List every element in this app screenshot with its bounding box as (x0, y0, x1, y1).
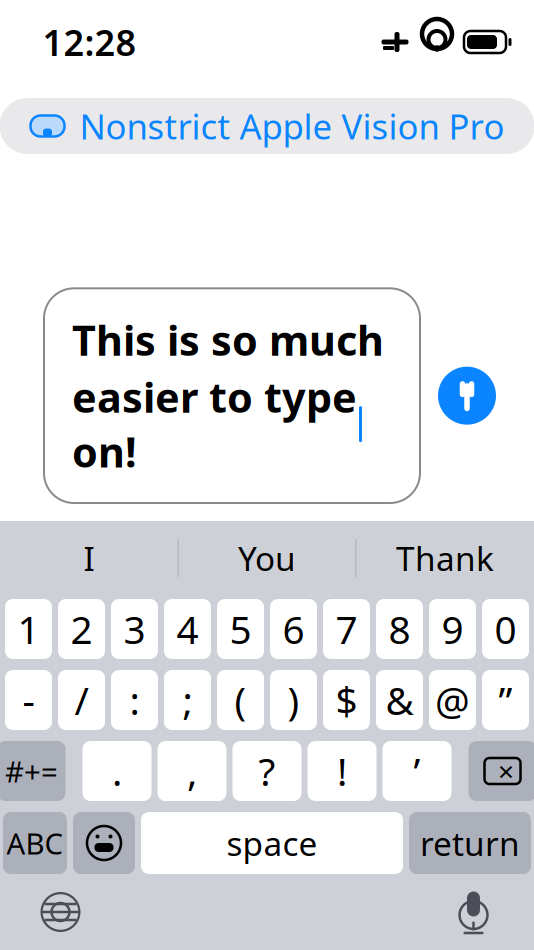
button[interactable]: 8 (376, 599, 423, 659)
button[interactable]: $ (323, 670, 370, 730)
button[interactable]: Delete (468, 741, 534, 801)
button[interactable]: 7 (323, 599, 370, 659)
button[interactable]: Emoji (73, 812, 135, 874)
staticText: You (238, 536, 296, 580)
staticText: ( (234, 674, 246, 726)
button[interactable]: ” (482, 670, 529, 730)
button[interactable]: Dictation (437, 876, 509, 948)
staticText: space (226, 821, 317, 865)
staticText: I (83, 536, 94, 580)
staticText: return (420, 821, 520, 865)
button[interactable]: I (0, 521, 177, 595)
staticText: 3 (123, 603, 145, 655)
button[interactable]: - (5, 670, 52, 730)
button[interactable]: Nonstrict Apple Vision Pro (0, 98, 534, 154)
staticText: - (22, 674, 34, 726)
button[interactable]: Send (438, 367, 496, 425)
staticText: : (129, 674, 139, 726)
button[interactable]: space (141, 812, 403, 874)
staticText: 12:28 (42, 18, 136, 66)
staticText: Thank (396, 536, 494, 580)
button[interactable]: You (179, 521, 355, 595)
staticText: @ (435, 674, 470, 726)
staticText: This is so much (72, 312, 384, 367)
staticText: 2 (70, 603, 92, 655)
staticText: ’ (413, 745, 420, 797)
staticText: #+= (5, 751, 58, 790)
staticText: ? (258, 745, 275, 797)
button[interactable]: 5 (217, 599, 264, 659)
staticText: $ (335, 674, 357, 726)
button[interactable]: 9 (429, 599, 476, 659)
staticText: 6 (282, 603, 304, 655)
button[interactable]: #+= (0, 741, 65, 801)
staticText: , (187, 745, 197, 797)
button[interactable]: ? (232, 741, 301, 801)
button[interactable]: , (157, 741, 226, 801)
staticText: & (385, 674, 413, 726)
staticText: ABC (6, 823, 63, 862)
staticText: 7 (335, 603, 357, 655)
button[interactable]: . (82, 741, 151, 801)
staticText: ) (287, 674, 299, 726)
button[interactable]: 3 (111, 599, 158, 659)
button[interactable]: return (409, 812, 531, 874)
button[interactable]: 0 (482, 599, 529, 659)
staticText: 4 (176, 603, 198, 655)
button[interactable]: 4 (164, 599, 211, 659)
button[interactable]: 1 (5, 599, 52, 659)
staticText: × (498, 752, 514, 790)
button[interactable]: @ (429, 670, 476, 730)
button[interactable]: 2 (58, 599, 105, 659)
staticText: 8 (388, 603, 410, 655)
staticText: 1 (17, 603, 39, 655)
button[interactable]: : (111, 670, 158, 730)
button[interactable]: ; (164, 670, 211, 730)
staticText: ” (498, 674, 512, 726)
button[interactable]: ABC (3, 812, 67, 874)
staticText: / (74, 674, 88, 726)
button[interactable]: Next keyboard (24, 876, 96, 948)
button[interactable]: ( (217, 670, 264, 730)
button[interactable]: Thank (356, 521, 533, 595)
staticText: ! (337, 745, 347, 797)
button[interactable]: ! (307, 741, 376, 801)
staticText: 5 (229, 603, 251, 655)
staticText: Nonstrict Apple Vision Pro (79, 103, 504, 149)
staticText: easier to type on! (72, 369, 357, 479)
staticText: 0 (494, 603, 516, 655)
staticText: 9 (441, 603, 463, 655)
staticText: . (112, 745, 122, 797)
button[interactable]: ) (270, 670, 317, 730)
button[interactable]: / (58, 670, 105, 730)
button[interactable]: ’ (382, 741, 451, 801)
button[interactable]: 6 (270, 599, 317, 659)
button[interactable]: & (376, 670, 423, 730)
staticText: ; (182, 674, 192, 726)
